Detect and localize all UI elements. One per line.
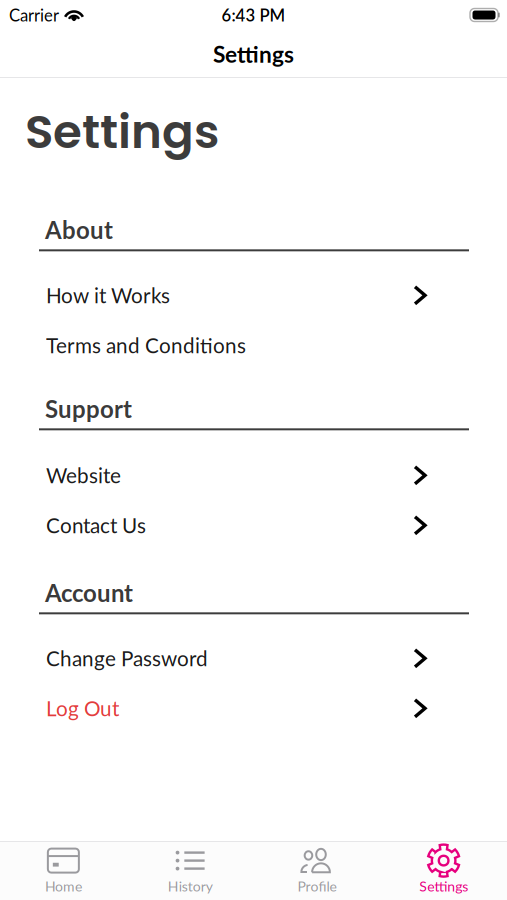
staticText: Profile [297, 878, 336, 894]
staticText: Home [45, 878, 82, 894]
staticText: Settings [419, 878, 468, 894]
staticText: About [45, 215, 113, 244]
button[interactable]: Settings [380, 847, 507, 894]
staticText: How it Works [46, 283, 170, 308]
staticText: Account [45, 578, 133, 607]
staticText: 6:43 PM [221, 5, 285, 25]
staticText: Change Password [46, 646, 208, 671]
button[interactable]: Change Password [0, 646, 507, 670]
button[interactable]: Home [0, 847, 127, 894]
staticText: Contact Us [46, 513, 146, 538]
staticText: Log Out [46, 696, 119, 721]
button[interactable]: Terms and Conditions [0, 333, 507, 357]
staticText: Settings [213, 40, 294, 68]
staticText: Carrier [9, 5, 59, 25]
button[interactable]: History [127, 847, 254, 894]
staticText: Website [46, 463, 121, 488]
staticText: Settings [25, 99, 219, 164]
button[interactable]: Log Out [0, 696, 507, 720]
button[interactable]: Profile [253, 847, 380, 894]
button[interactable]: Contact Us [0, 513, 507, 537]
button[interactable]: Website [0, 463, 507, 487]
staticText: Support [45, 394, 132, 423]
staticText: Terms and Conditions [46, 333, 246, 358]
staticText: History [168, 878, 213, 894]
button[interactable]: How it Works [0, 283, 507, 307]
